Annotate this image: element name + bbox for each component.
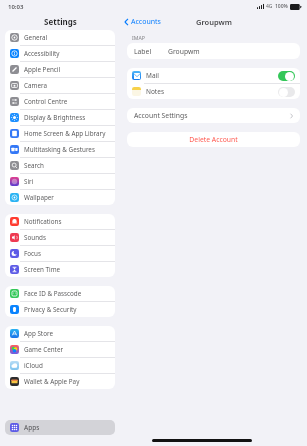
button[interactable]: Screen Time [5, 262, 115, 277]
button[interactable]: Apple Pencil [5, 62, 115, 77]
button[interactable]: Display & Brightness [5, 110, 115, 125]
button[interactable]: Mail toggle [278, 71, 295, 81]
staticText: Settings [44, 16, 77, 27]
staticText: Wallpaper [24, 193, 54, 202]
button[interactable]: Home Screen & App Library [5, 126, 115, 141]
button[interactable]: Accounts [124, 17, 161, 27]
staticText: Screen Time [24, 265, 61, 274]
button[interactable]: Camera [5, 78, 115, 93]
staticText: Apps [24, 423, 40, 432]
button[interactable]: Focus [5, 246, 115, 261]
button[interactable]: iCloud [5, 358, 115, 373]
staticText: Siri [24, 177, 34, 186]
button[interactable]: Label [127, 43, 300, 59]
staticText: Groupwm [196, 17, 232, 27]
staticText: iCloud [24, 361, 43, 370]
button[interactable]: Accessibility [5, 46, 115, 61]
staticText: Label [134, 47, 152, 56]
staticText: Face ID & Passcode [24, 289, 82, 298]
staticText: Groupwm [168, 47, 200, 56]
staticText: Sounds [24, 233, 46, 242]
staticText: IMAP [132, 34, 145, 41]
staticText: Privacy & Security [24, 305, 77, 314]
button[interactable]: Notes toggle [278, 87, 295, 97]
staticText: Notes [146, 87, 164, 96]
staticText: Accessibility [24, 49, 60, 58]
staticText: Multitasking & Gestures [24, 145, 95, 154]
staticText: Delete Account [189, 135, 238, 144]
button[interactable]: General [5, 30, 115, 45]
staticText: Display & Brightness [24, 113, 86, 122]
button[interactable]: Delete Account [127, 132, 300, 147]
staticText: Search [24, 161, 44, 170]
staticText: Notifications [24, 217, 62, 226]
button[interactable]: Search [5, 158, 115, 173]
button[interactable]: Apps [5, 420, 115, 435]
staticText: Mail [146, 71, 159, 80]
staticText: Account Settings [134, 111, 188, 120]
staticText: Focus [24, 249, 42, 258]
staticText: 10:03 [8, 3, 24, 11]
button[interactable]: Wallet & Apple Pay [5, 374, 115, 389]
staticText: General [24, 33, 48, 42]
staticText: Apple Pencil [24, 65, 61, 74]
button[interactable]: Privacy & Security [5, 302, 115, 317]
button[interactable]: Mail [127, 68, 300, 83]
staticText: Control Centre [24, 97, 68, 106]
button[interactable]: Game Center [5, 342, 115, 357]
staticText: App Store [24, 329, 53, 338]
staticText: Accounts [131, 17, 161, 27]
button[interactable]: Account Settings [127, 108, 300, 123]
staticText: Wallet & Apple Pay [24, 377, 80, 386]
button[interactable]: App Store [5, 326, 115, 341]
button[interactable]: Notifications [5, 214, 115, 229]
button[interactable]: Wallpaper [5, 190, 115, 205]
button[interactable]: Multitasking & Gestures [5, 142, 115, 157]
button[interactable]: Sounds [5, 230, 115, 245]
button[interactable]: Notes [127, 84, 300, 99]
staticText: Home Screen & App Library [24, 129, 106, 138]
button[interactable]: Siri [5, 174, 115, 189]
staticText: Game Center [24, 345, 64, 354]
button[interactable]: Control Centre [5, 94, 115, 109]
button[interactable]: Face ID & Passcode [5, 286, 115, 301]
staticText: 100% [275, 3, 288, 10]
staticText: 4G [266, 3, 273, 10]
staticText: Camera [24, 81, 47, 90]
